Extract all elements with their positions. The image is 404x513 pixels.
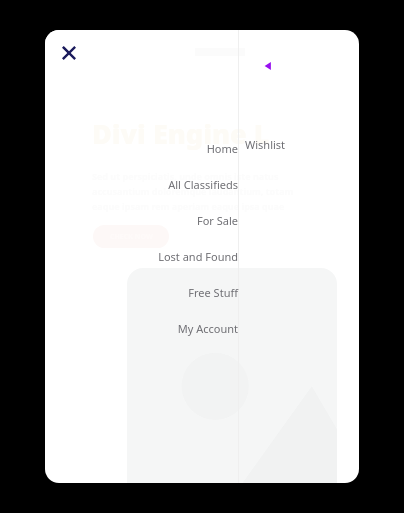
staticText: Home xyxy=(206,141,238,156)
staticText: accusantium doloremque laudantium, totam xyxy=(92,185,294,197)
button[interactable]: For Sale xyxy=(85,209,238,231)
staticText: Wishlist xyxy=(245,137,286,152)
staticText: Lost and Found xyxy=(158,249,238,264)
button[interactable]: Lost and Found xyxy=(85,245,238,267)
staticText: Divi Engine L xyxy=(92,115,270,152)
button[interactable]: Close xyxy=(45,30,93,75)
staticText: Sed ut perspiciatis, unde omnis iste nat… xyxy=(92,170,279,182)
staticText: For Sale xyxy=(196,213,238,228)
button[interactable]: All Classifieds xyxy=(85,173,238,195)
button[interactable]: My Account xyxy=(85,317,238,339)
staticText: Free Stuff xyxy=(188,285,238,300)
button[interactable]: Free Stuff xyxy=(85,281,238,303)
button[interactable]: Home xyxy=(85,137,238,159)
staticText: All Classifieds xyxy=(168,177,238,192)
staticText: My Account xyxy=(177,321,238,336)
button[interactable]: Wishlist xyxy=(245,133,345,155)
button[interactable]: Back xyxy=(251,52,285,80)
